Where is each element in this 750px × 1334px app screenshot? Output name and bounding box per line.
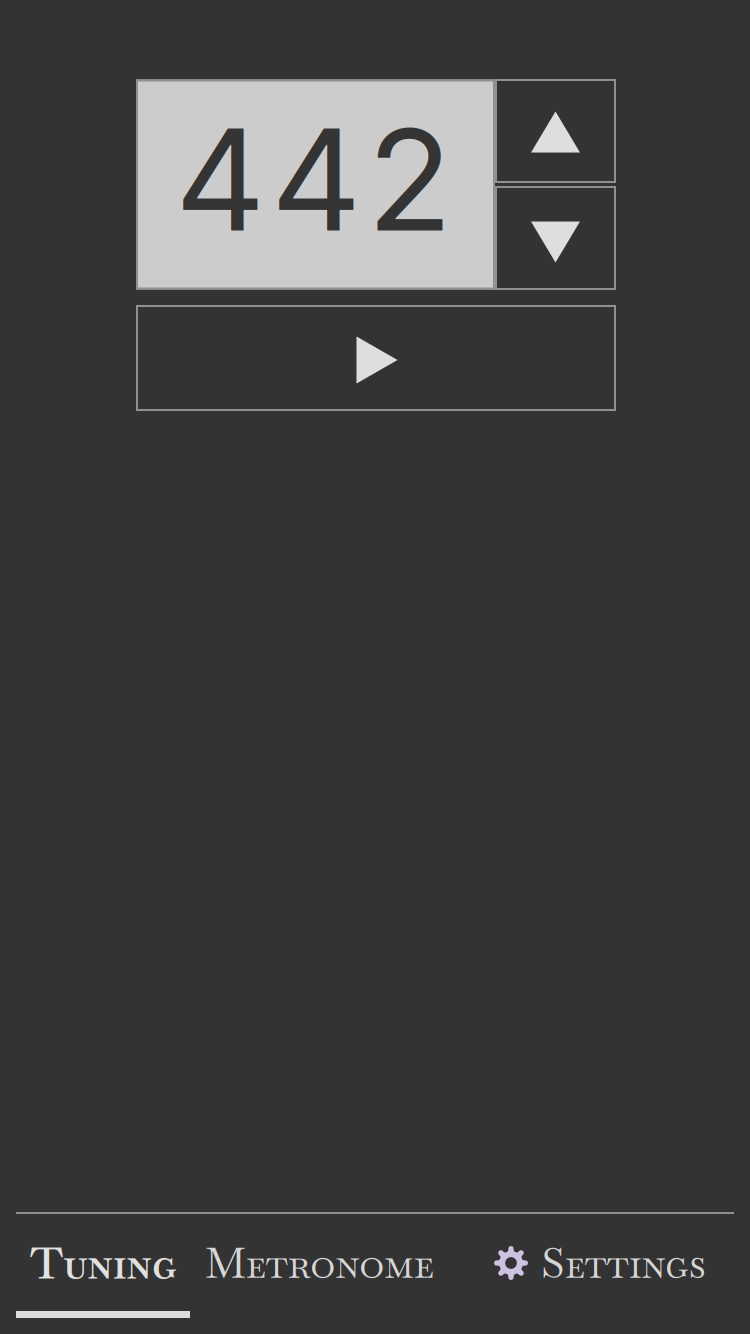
button[interactable]: Settings — [490, 1222, 709, 1304]
staticText: Settings — [541, 1236, 705, 1290]
staticText: Tuning — [30, 1235, 177, 1291]
staticText: 442 — [175, 95, 452, 264]
button[interactable]: Increase reference pitch — [495, 79, 616, 183]
button[interactable]: Tuning — [26, 1221, 181, 1305]
button[interactable]: Decrease reference pitch — [495, 186, 616, 290]
button[interactable]: Metronome — [201, 1222, 438, 1304]
button[interactable]: Play reference tone — [136, 305, 616, 411]
staticText: Metronome — [205, 1236, 434, 1290]
